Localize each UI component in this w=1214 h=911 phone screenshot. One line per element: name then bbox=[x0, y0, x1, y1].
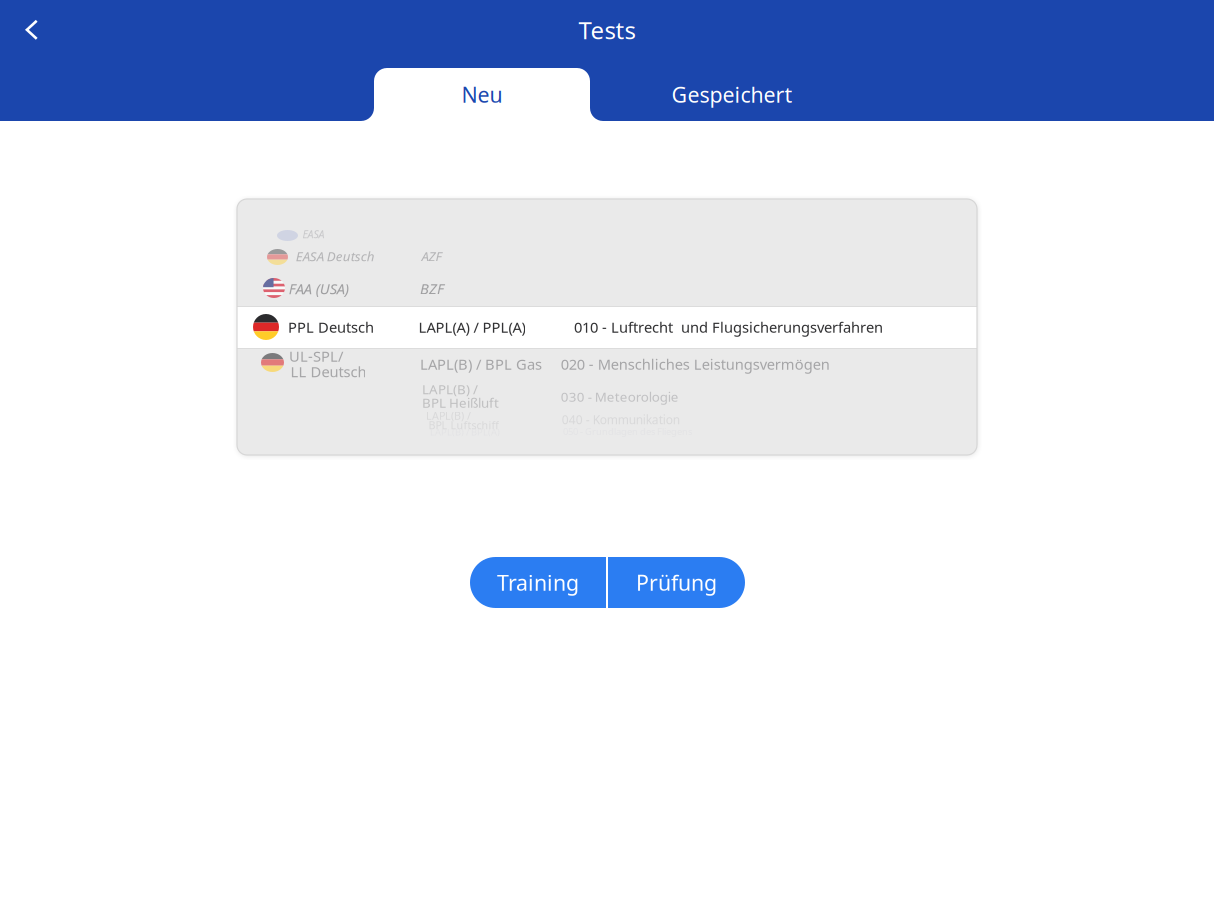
staticText: BZF bbox=[420, 279, 444, 298]
staticText: EASA Deutsch bbox=[296, 247, 375, 265]
staticText: BPL Heißluft bbox=[422, 394, 499, 411]
button[interactable]: Subject: 010 - Luftrecht und Flugsicheru… bbox=[574, 199, 979, 455]
staticText: Tests bbox=[578, 14, 635, 46]
staticText: LAPL(B) / BPL(A) bbox=[430, 426, 500, 438]
button[interactable]: Neu bbox=[374, 68, 590, 121]
staticText: 040 - Kommunikation bbox=[562, 411, 680, 427]
staticText: 020 - Menschliches Leistungsvermögen bbox=[561, 354, 830, 374]
staticText: UL-SPL/ bbox=[289, 346, 343, 366]
button[interactable]: Licence authority: PPL Deutsch bbox=[237, 199, 409, 455]
staticText: BPL Luftschiff bbox=[428, 418, 498, 432]
staticText: FAA (USA) bbox=[289, 279, 349, 298]
staticText: AZF bbox=[421, 247, 441, 265]
staticText: Gespeichert bbox=[671, 80, 792, 109]
button[interactable]: Prüfung bbox=[608, 557, 745, 608]
staticText: LAPL(B) / bbox=[422, 380, 478, 398]
staticText: PPL Deutsch bbox=[288, 317, 374, 337]
staticText: 010 - Luftrecht und Flugsicherungsverfah… bbox=[574, 317, 883, 337]
staticText: LAPL(A) / PPL(A) bbox=[418, 317, 525, 337]
button[interactable]: Gespeichert bbox=[590, 68, 874, 121]
staticText: LL Deutsch bbox=[290, 362, 366, 381]
button[interactable]: Licence: LAPL(A) / PPL(A) bbox=[417, 199, 572, 455]
button[interactable]: Back bbox=[10, 8, 54, 52]
staticText: Prüfung bbox=[636, 568, 717, 597]
staticText: Training bbox=[497, 568, 579, 597]
staticText: EASA bbox=[302, 227, 324, 241]
staticText: LAPL(B) / bbox=[426, 408, 471, 423]
staticText: Neu bbox=[461, 80, 502, 109]
button[interactable]: Training bbox=[470, 557, 606, 608]
staticText: LAPL(B) / BPL Gas bbox=[420, 354, 542, 374]
staticText: 030 - Meteorologie bbox=[561, 388, 679, 405]
